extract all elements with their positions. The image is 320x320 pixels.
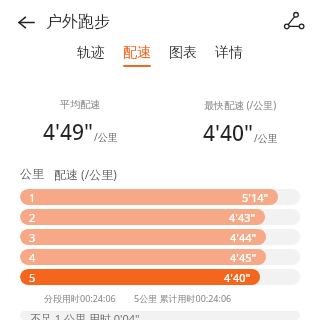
staticText: 4'40" xyxy=(224,270,251,285)
staticText: 4'49" xyxy=(43,118,94,147)
button[interactable]: 不足 1 公里 用时 0'04" xyxy=(20,311,300,320)
staticText: 最快配速 (/公里) xyxy=(204,98,277,112)
staticText: 4'45" xyxy=(230,250,257,265)
staticText: 4'44" xyxy=(230,230,257,245)
button[interactable]: 配速 xyxy=(121,44,153,67)
staticText: 1 xyxy=(29,190,36,205)
button[interactable]: Share xyxy=(278,6,310,38)
staticText: 配速 xyxy=(123,44,151,62)
staticText: 5 xyxy=(29,270,36,285)
staticText: 户外跑步 xyxy=(46,12,110,32)
button[interactable]: 详情 xyxy=(213,44,245,67)
staticText: /公里 xyxy=(254,131,278,145)
button[interactable]: 轨迹 xyxy=(75,44,107,67)
staticText: 配速 (/公里) xyxy=(54,166,117,182)
button[interactable]: Back xyxy=(10,6,42,38)
button[interactable]: 1 xyxy=(20,189,300,205)
staticText: 4'40" xyxy=(203,119,254,148)
staticText: 分段用时00:24:06 xyxy=(44,292,116,304)
staticText: /公里 xyxy=(94,130,118,144)
button[interactable]: 2 xyxy=(20,209,300,225)
staticText: 5'14" xyxy=(242,190,269,205)
staticText: 公里 xyxy=(20,166,44,181)
staticText: 平均配速 xyxy=(60,98,100,111)
staticText: 5公里 累计用时00:24:06 xyxy=(134,292,232,304)
staticText: 2 xyxy=(29,210,36,225)
staticText: 轨迹 xyxy=(77,44,105,62)
button[interactable]: 5 xyxy=(20,269,300,285)
staticText: 3 xyxy=(29,230,36,245)
staticText: 4 xyxy=(29,250,36,265)
button[interactable]: 图表 xyxy=(167,44,199,67)
staticText: 不足 1 公里 用时 0'04" xyxy=(30,311,140,320)
staticText: 4'43" xyxy=(229,210,256,225)
button[interactable]: 4 xyxy=(20,249,300,265)
staticText: 详情 xyxy=(215,44,243,62)
staticText: 图表 xyxy=(169,44,197,62)
button[interactable]: 3 xyxy=(20,229,300,245)
